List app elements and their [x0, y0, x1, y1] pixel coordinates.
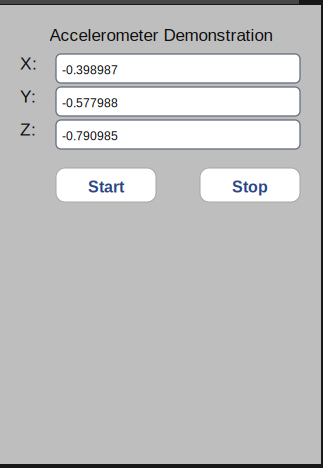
staticText: Stop — [232, 178, 268, 196]
staticText: -0.398987 — [62, 63, 118, 77]
staticText: Start — [88, 178, 124, 196]
staticText: Accelerometer Demonstration — [49, 25, 272, 45]
staticText: -0.790985 — [62, 129, 118, 143]
staticText: -0.577988 — [62, 96, 118, 110]
staticText: Y: — [20, 87, 36, 106]
button[interactable]: Stop — [200, 168, 300, 202]
staticText: X: — [20, 54, 37, 73]
button[interactable]: Start — [56, 168, 156, 202]
staticText: Z: — [20, 120, 36, 139]
